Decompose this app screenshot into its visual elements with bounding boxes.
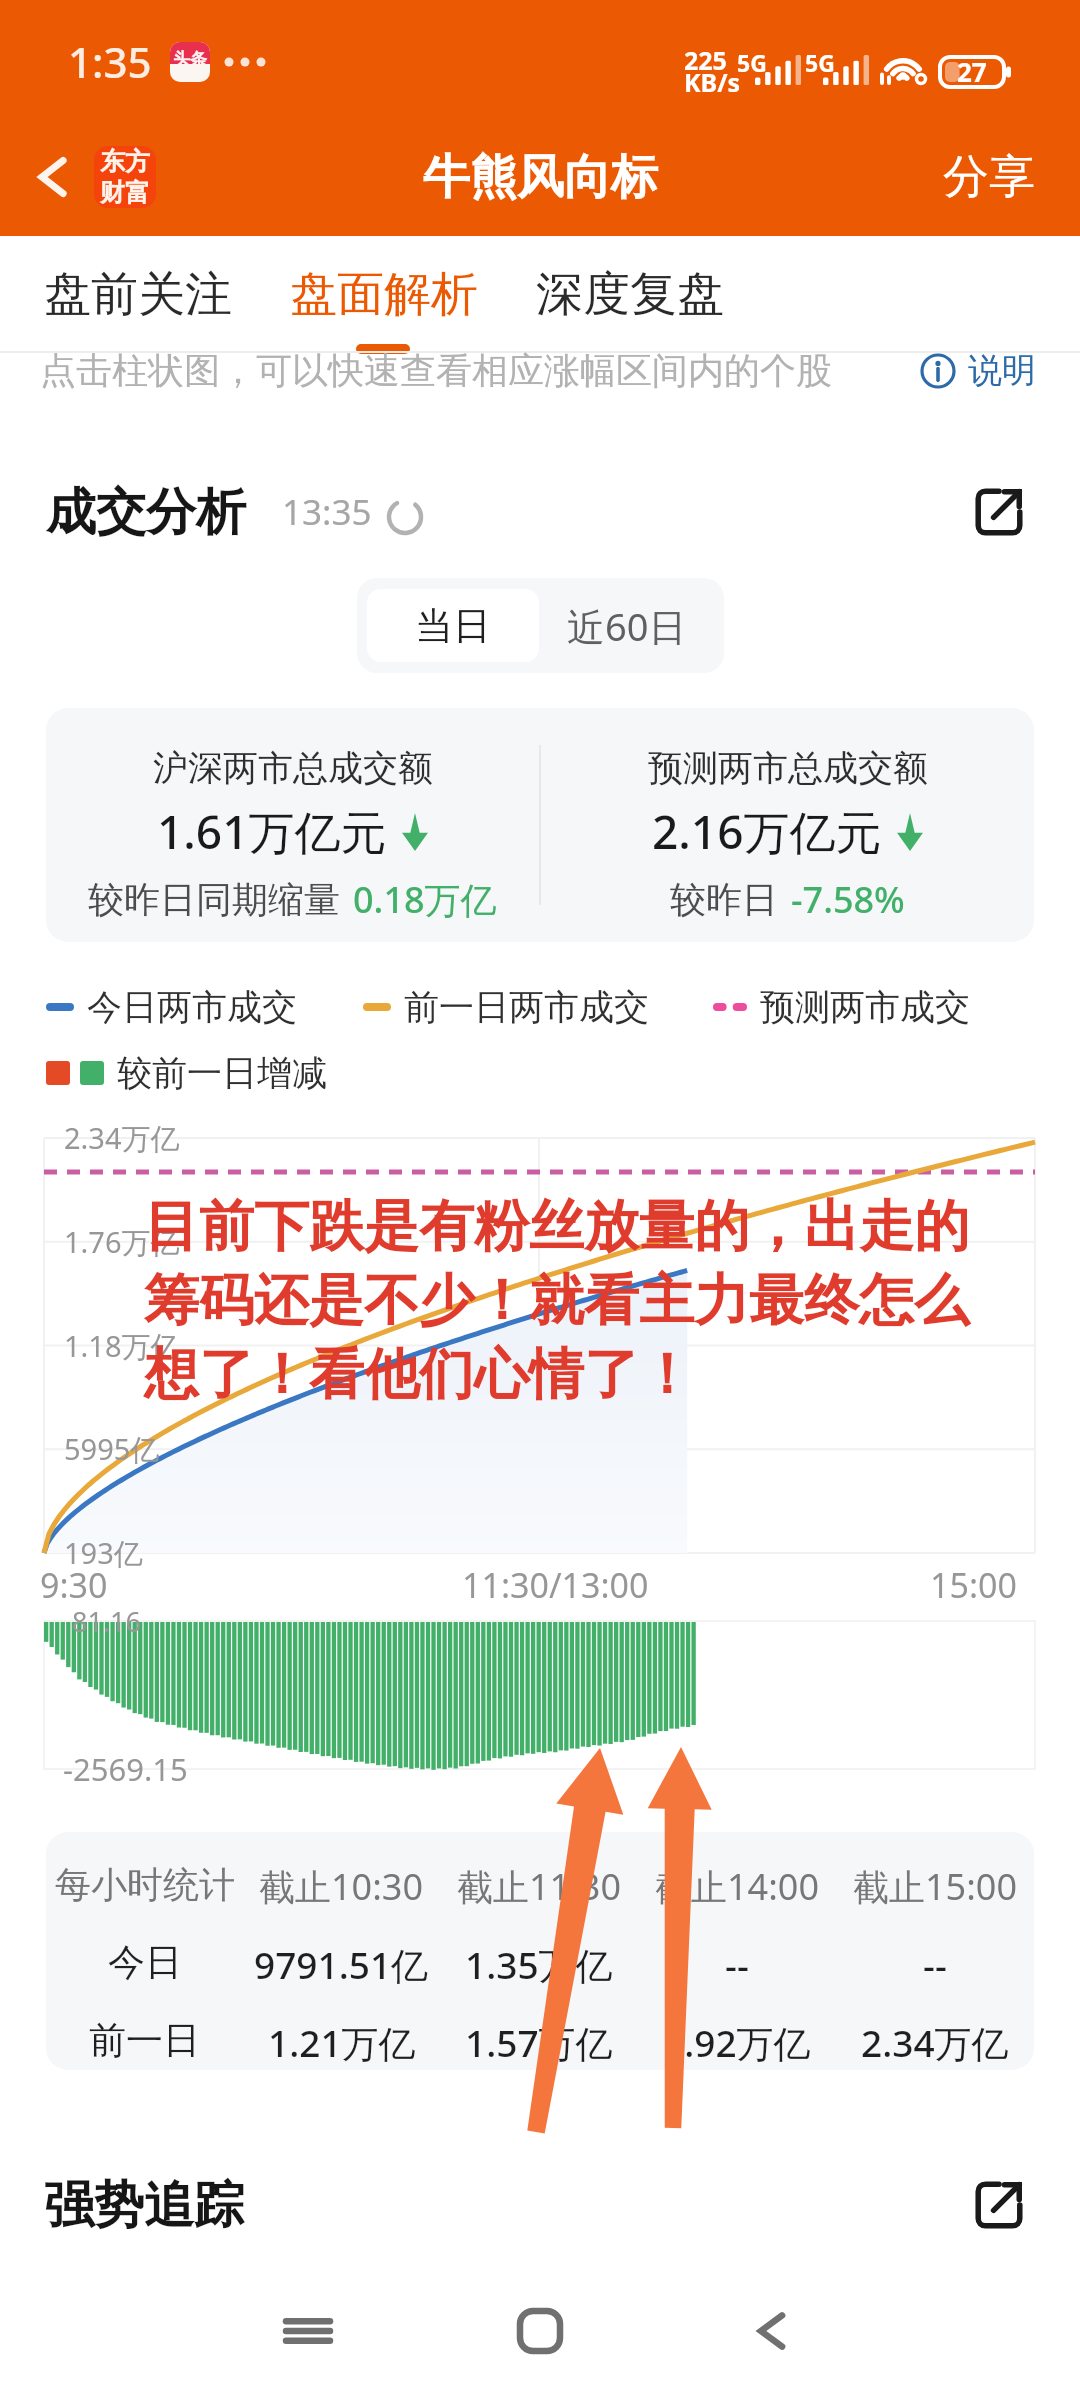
staticText: 13:35 (282, 488, 372, 536)
button[interactable]: 盘面解析 (290, 255, 478, 334)
staticText: 较昨日同期缩量 (88, 877, 340, 922)
staticText: 1.76万亿 (64, 1222, 180, 1262)
button[interactable]: Open in new (972, 2178, 1026, 2232)
button[interactable]: 盘前关注 (44, 255, 232, 334)
staticText: 1.57万亿 (465, 2017, 613, 2068)
staticText: 截止14:00 (655, 1862, 820, 1911)
staticText: 较昨日 (670, 877, 778, 922)
button[interactable]: 近60日 (539, 589, 714, 662)
button[interactable]: Back (0, 146, 170, 208)
staticText: 前一日两市成交 (404, 985, 649, 1029)
staticText: 1.21万亿 (268, 2017, 416, 2068)
button[interactable]: 沪深两市总成交额 (46, 708, 1034, 942)
staticText: 1.35万亿 (465, 1939, 613, 1990)
staticText: 1.61万亿元 (157, 800, 387, 863)
button[interactable]: 分享 (917, 132, 1080, 222)
staticText: 5G (737, 47, 767, 78)
staticText: 预测两市总成交额 (648, 746, 928, 790)
staticText: 成交分析 (46, 481, 246, 544)
staticText: 9791.51亿 (254, 1939, 429, 1990)
staticText: -- (923, 1939, 947, 1989)
staticText: 193亿 (64, 1533, 143, 1573)
staticText: 头条 (173, 49, 207, 70)
button[interactable]: 强势追踪 (0, 2174, 244, 2237)
button[interactable]: 深度复盘 (536, 255, 724, 334)
button[interactable]: Recent apps (232, 2262, 384, 2400)
button[interactable]: 每小时统计 (46, 1832, 1034, 2070)
staticText: 目前下跌是有粉丝放量的，出走的 筹码还是不少！就看主力最终怎么 想了！看他们心情… (144, 1192, 969, 1410)
staticText: 每小时统计 (55, 1862, 235, 1907)
staticText: 点击柱状图，可以快速查看相应涨幅区间内的个股 (40, 348, 832, 393)
staticText: 牛熊风向标 (423, 148, 658, 207)
staticText: 11:30/13:00 (462, 1562, 649, 1608)
staticText: 深度复盘 (536, 265, 724, 324)
staticText: -2569.15 (63, 1748, 188, 1790)
staticText: 截止15:00 (853, 1862, 1018, 1911)
staticText: 81.16 (72, 1603, 142, 1640)
staticText: 15:00 (930, 1562, 1017, 1608)
staticText: 1:35 (68, 33, 152, 90)
staticText: 2.34万亿 (861, 2017, 1009, 2068)
button[interactable]: 当日 (367, 589, 539, 662)
staticText: 1.18万亿 (64, 1326, 180, 1366)
staticText: 225 (684, 43, 727, 77)
staticText: 前一日 (89, 2017, 200, 2064)
staticText: 说明 (968, 349, 1036, 392)
staticText: 分享 (943, 148, 1035, 206)
staticText: 今日 (108, 1939, 182, 1986)
staticText: 较前一日增减 (117, 1051, 327, 1095)
button[interactable]: 说明 (904, 349, 1080, 392)
staticText: 5G (805, 47, 835, 78)
staticText: 预测两市成交 (760, 985, 970, 1029)
staticText: 今日两市成交 (87, 985, 297, 1029)
staticText: -7.58% (791, 875, 905, 924)
staticText: 0.18万亿 (353, 875, 497, 924)
button[interactable]: Back (696, 2262, 848, 2400)
button[interactable]: 成交分析 (0, 481, 424, 544)
staticText: 2.34万亿 (64, 1118, 180, 1158)
staticText: KB/s (684, 65, 741, 99)
staticText: 27 (957, 54, 987, 89)
staticText: 9:30 (40, 1562, 108, 1608)
staticText: 东方 (100, 146, 150, 177)
staticText: 沪深两市总成交额 (153, 746, 433, 790)
staticText: 5995亿 (64, 1429, 160, 1469)
staticText: 当日 (415, 602, 491, 650)
staticText: 近60日 (567, 600, 687, 652)
staticText: -- (725, 1939, 749, 1989)
staticText: 财富 (100, 177, 150, 208)
staticText: 盘面解析 (290, 265, 478, 324)
staticText: 1.92万亿 (663, 2017, 811, 2068)
staticText: 截止10:30 (259, 1862, 424, 1911)
button[interactable]: Home (464, 2262, 616, 2400)
staticText: 2.16万亿元 (652, 800, 882, 863)
staticText: 截止11:30 (457, 1862, 622, 1911)
staticText: 盘前关注 (44, 265, 232, 324)
button[interactable]: Open in new (972, 485, 1026, 539)
